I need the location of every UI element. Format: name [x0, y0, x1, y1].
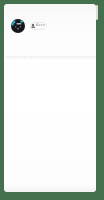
button[interactable]: Account: [30, 22, 47, 30]
button[interactable]: Home: [11, 19, 25, 33]
staticText: Account: [36, 22, 45, 30]
